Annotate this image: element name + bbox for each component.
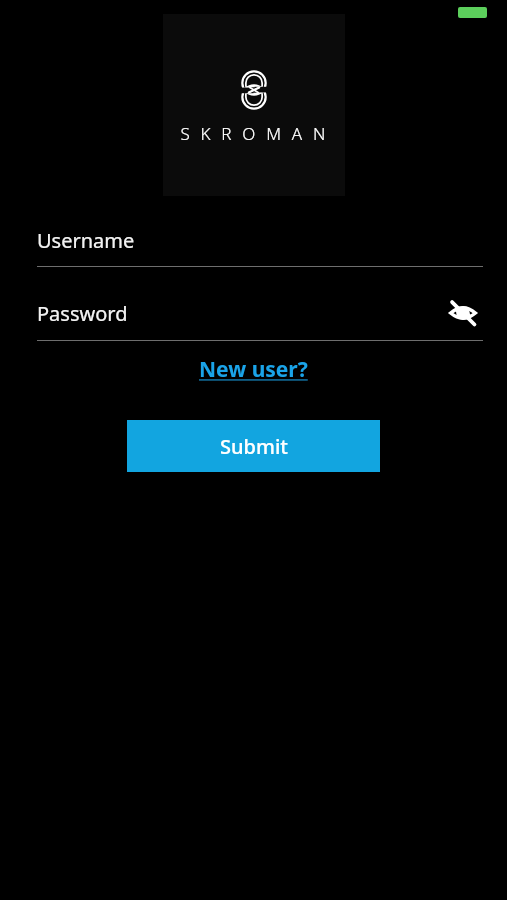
button[interactable]: Show password [443, 293, 483, 333]
staticText: New user? [199, 355, 308, 384]
button[interactable]: Submit [127, 420, 380, 472]
staticText: Username [37, 227, 135, 254]
staticText: Password [37, 300, 128, 327]
staticText: Submit [220, 433, 288, 460]
button[interactable]: Username [37, 213, 483, 267]
button[interactable]: New user? [193, 352, 314, 387]
button[interactable]: Password [37, 286, 483, 340]
staticText: S K R O M A N [180, 122, 329, 145]
